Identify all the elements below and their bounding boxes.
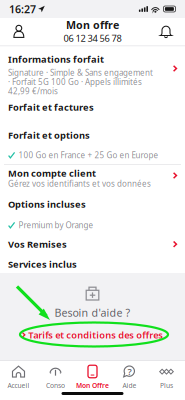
staticText: 100 Go en France + 25 Go en Europe [18, 150, 158, 160]
staticText: 42,99 €/mois [8, 86, 58, 96]
button[interactable]: Services inclus [0, 258, 185, 270]
button[interactable]: Plus [148, 360, 185, 388]
button[interactable]: Mon compte [6, 20, 32, 42]
button[interactable]: Tarifs et conditions des offres [22, 329, 163, 341]
staticText: Accueil [7, 381, 29, 390]
staticText: Gérez vos identifiants et vos données [8, 178, 151, 189]
staticText: · Forfait 5G 100 Go · Appels illimités [8, 77, 142, 87]
staticText: Conso [46, 381, 65, 390]
staticText: Options incluses [8, 198, 86, 210]
staticText: 16:27 [9, 2, 36, 16]
staticText: Forfait et factures [8, 101, 94, 113]
staticText: Mon Offre [76, 381, 109, 390]
button[interactable]: Accueil [0, 360, 37, 388]
staticText: Services inclus [8, 258, 77, 270]
staticText: Signature · Simple & Sans engagement [8, 67, 153, 78]
button[interactable]: Mon Offre [74, 360, 111, 388]
staticText: Forfait et options [8, 129, 90, 141]
staticText: 06 12 34 56 78 [63, 32, 121, 44]
button[interactable]: Mon compte client [0, 167, 185, 189]
button[interactable]: Besoin d'aide ? [0, 286, 185, 320]
button[interactable]: ? [111, 360, 148, 388]
staticText: ? [127, 365, 131, 378]
staticText: Mon offre [66, 18, 119, 32]
button[interactable]: Notifications [153, 20, 179, 42]
button[interactable]: Options incluses [0, 198, 185, 230]
staticText: Besoin d'aide ? [54, 305, 130, 320]
staticText: Tarifs et conditions des offres [28, 329, 163, 341]
button[interactable]: Forfait et options [0, 129, 185, 160]
button[interactable]: Informations forfait [0, 53, 185, 97]
staticText: Informations forfait [8, 53, 104, 65]
staticText: Premium by Orange [18, 220, 93, 230]
button[interactable]: Forfait et factures [0, 101, 185, 113]
button[interactable]: Conso [37, 360, 74, 388]
staticText: Mon compte client [8, 167, 96, 179]
staticText: Vos Remises [8, 238, 67, 250]
staticText: Plus [160, 381, 173, 390]
staticText: Aide [122, 381, 136, 390]
button[interactable]: Vos Remises [0, 238, 185, 250]
